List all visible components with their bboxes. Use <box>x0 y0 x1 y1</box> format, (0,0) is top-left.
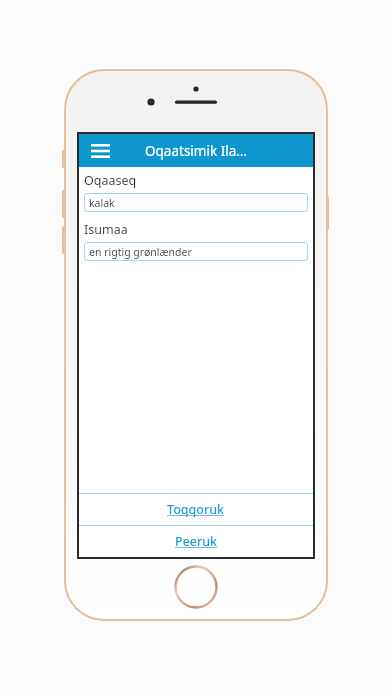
staticText: Oqaatsimik Ila… <box>145 142 247 160</box>
staticText: en rigtig grønlænder <box>89 245 192 259</box>
staticText: Oqaaseq <box>84 172 137 189</box>
button[interactable]: Peeruk <box>79 526 313 557</box>
staticText: kalak <box>89 196 115 210</box>
staticText: Toqqoruk <box>167 501 225 518</box>
button[interactable]: Open navigation menu <box>85 136 115 166</box>
button[interactable]: Toqqoruk <box>79 494 313 525</box>
staticText: Isumaa <box>84 221 128 238</box>
button[interactable]: en rigtig grønlænder <box>84 242 308 261</box>
button[interactable]: kalak <box>84 193 308 212</box>
staticText: Peeruk <box>175 533 218 550</box>
